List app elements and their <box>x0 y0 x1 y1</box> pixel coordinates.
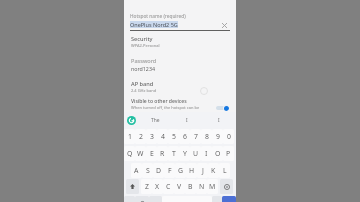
staticText: 1 <box>128 132 132 141</box>
button[interactable]: A <box>131 163 142 178</box>
button[interactable]: Y <box>179 146 190 161</box>
button[interactable]: U <box>190 146 201 161</box>
button[interactable]: Gboard <box>127 116 136 125</box>
button[interactable]: K <box>208 163 219 178</box>
staticText: I <box>218 117 220 124</box>
staticText: M <box>209 182 216 191</box>
staticText: H <box>189 166 195 175</box>
button[interactable]: 0 <box>223 129 234 144</box>
button[interactable]: O <box>212 146 223 161</box>
staticText: 6 <box>183 132 187 141</box>
staticText: L <box>223 166 227 175</box>
button[interactable]: M <box>207 179 218 194</box>
button[interactable]: N <box>196 179 207 194</box>
button[interactable]: I <box>171 112 203 128</box>
staticText: N <box>199 182 205 191</box>
staticText: AP band <box>131 80 154 88</box>
staticText: G <box>178 166 184 175</box>
staticText: F <box>168 166 172 175</box>
staticText: OnePlus Nord2 5G <box>130 21 178 28</box>
staticText: 4 <box>161 132 165 141</box>
button[interactable]: L <box>219 163 230 178</box>
staticText: K <box>211 166 216 175</box>
button[interactable]: G <box>175 163 186 178</box>
button[interactable]: Shift <box>126 179 139 194</box>
button[interactable]: The <box>140 112 171 128</box>
button[interactable]: 3 <box>146 129 157 144</box>
staticText: 3 <box>150 132 154 141</box>
staticText: I <box>186 117 188 124</box>
button[interactable]: Enter <box>222 196 236 202</box>
button[interactable]: 1 <box>124 129 135 144</box>
button[interactable]: 4 <box>157 129 168 144</box>
staticText: 5 <box>172 132 176 141</box>
staticText: 2.4 GHz band <box>131 88 157 93</box>
button[interactable]: X <box>152 179 163 194</box>
button[interactable]: Visible to other devices <box>124 98 236 110</box>
button[interactable]: I <box>203 112 235 128</box>
staticText: E <box>150 149 154 158</box>
button[interactable]: 7 <box>190 129 201 144</box>
staticText: O <box>215 149 221 158</box>
button[interactable]: Backspace <box>220 179 233 194</box>
button[interactable]: T <box>168 146 179 161</box>
button[interactable]: I <box>201 146 212 161</box>
staticText: Y <box>183 149 187 158</box>
button[interactable]: 5 <box>168 129 179 144</box>
staticText: Security <box>131 35 153 43</box>
staticText: 7 <box>194 132 198 141</box>
button[interactable]: 6 <box>179 129 190 144</box>
button[interactable]: Visible to other devices toggle <box>216 105 230 111</box>
button[interactable]: F <box>164 163 175 178</box>
button[interactable]: R <box>157 146 168 161</box>
staticText: The <box>151 117 160 124</box>
button[interactable]: P <box>223 146 234 161</box>
staticText: W <box>137 149 144 158</box>
button[interactable]: H <box>186 163 197 178</box>
staticText: When turned off, the hotspot can be <box>131 105 200 110</box>
button[interactable]: Z <box>141 179 152 194</box>
staticText: 0 <box>227 132 231 141</box>
button[interactable]: Emoji <box>135 196 149 202</box>
button[interactable]: Select AP band <box>200 87 208 95</box>
staticText: R <box>160 149 165 158</box>
staticText: WPA2-Personal <box>131 43 160 48</box>
staticText: P <box>226 149 231 158</box>
button[interactable]: J <box>197 163 208 178</box>
staticText: A <box>134 166 139 175</box>
staticText: 8 <box>205 132 209 141</box>
staticText: nord1234 <box>131 65 155 72</box>
button[interactable]: V <box>174 179 185 194</box>
button[interactable]: Q <box>124 146 135 161</box>
staticText: B <box>188 182 193 191</box>
button[interactable]: D <box>153 163 164 178</box>
button[interactable]: 9 <box>212 129 223 144</box>
staticText: D <box>156 166 162 175</box>
button[interactable]: 8 <box>201 129 212 144</box>
staticText: C <box>166 182 171 191</box>
button[interactable]: Clear text <box>220 21 229 30</box>
staticText: J <box>202 166 204 175</box>
staticText: S <box>146 166 150 175</box>
button[interactable]: W <box>135 146 146 161</box>
button[interactable]: C <box>163 179 174 194</box>
staticText: Visible to other devices <box>131 98 187 105</box>
staticText: T <box>172 149 176 158</box>
button[interactable]: Password <box>124 57 236 72</box>
button[interactable]: Security <box>124 35 236 48</box>
button[interactable]: S <box>142 163 153 178</box>
button[interactable]: 2 <box>135 129 146 144</box>
button[interactable]: E <box>146 146 157 161</box>
staticText: U <box>193 149 199 158</box>
button[interactable]: AP band <box>124 80 236 93</box>
staticText: 9 <box>216 132 220 141</box>
staticText: I <box>205 149 208 158</box>
staticText: V <box>177 182 182 191</box>
staticText: Hotspot name (required) <box>130 13 186 20</box>
button[interactable]: B <box>185 179 196 194</box>
